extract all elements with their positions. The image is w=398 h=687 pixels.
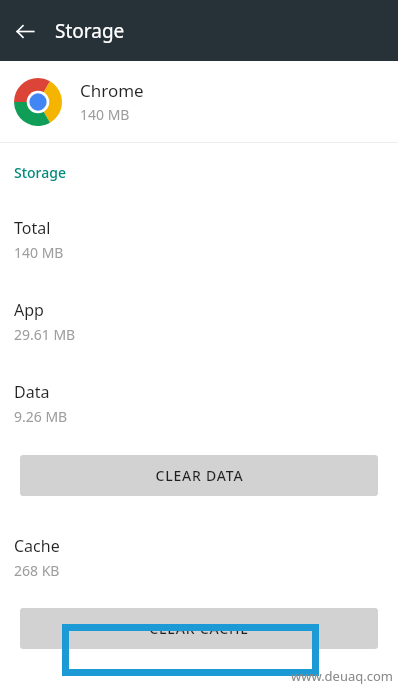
button[interactable]: CLEAR CACHE	[20, 608, 378, 649]
staticText: 140 MB	[14, 243, 64, 262]
staticText: Storage	[14, 163, 66, 182]
staticText: Data	[14, 381, 50, 403]
staticText: Cache	[14, 535, 60, 557]
button[interactable]: Back	[10, 16, 40, 46]
button[interactable]: Chrome	[0, 61, 398, 142]
staticText: CLEAR DATA	[155, 466, 244, 485]
staticText: www.deuaq.com	[291, 667, 394, 685]
staticText: 268 KB	[14, 561, 60, 580]
staticText: Storage	[55, 18, 125, 44]
staticText: 29.61 MB	[14, 325, 76, 344]
staticText: Total	[14, 217, 51, 239]
staticText: Chrome	[80, 79, 144, 102]
staticText: App	[14, 299, 44, 321]
staticText: CLEAR CACHE	[149, 619, 249, 638]
button[interactable]: CLEAR DATA	[20, 455, 378, 496]
staticText: 140 MB	[80, 105, 130, 124]
staticText: 9.26 MB	[14, 407, 68, 426]
